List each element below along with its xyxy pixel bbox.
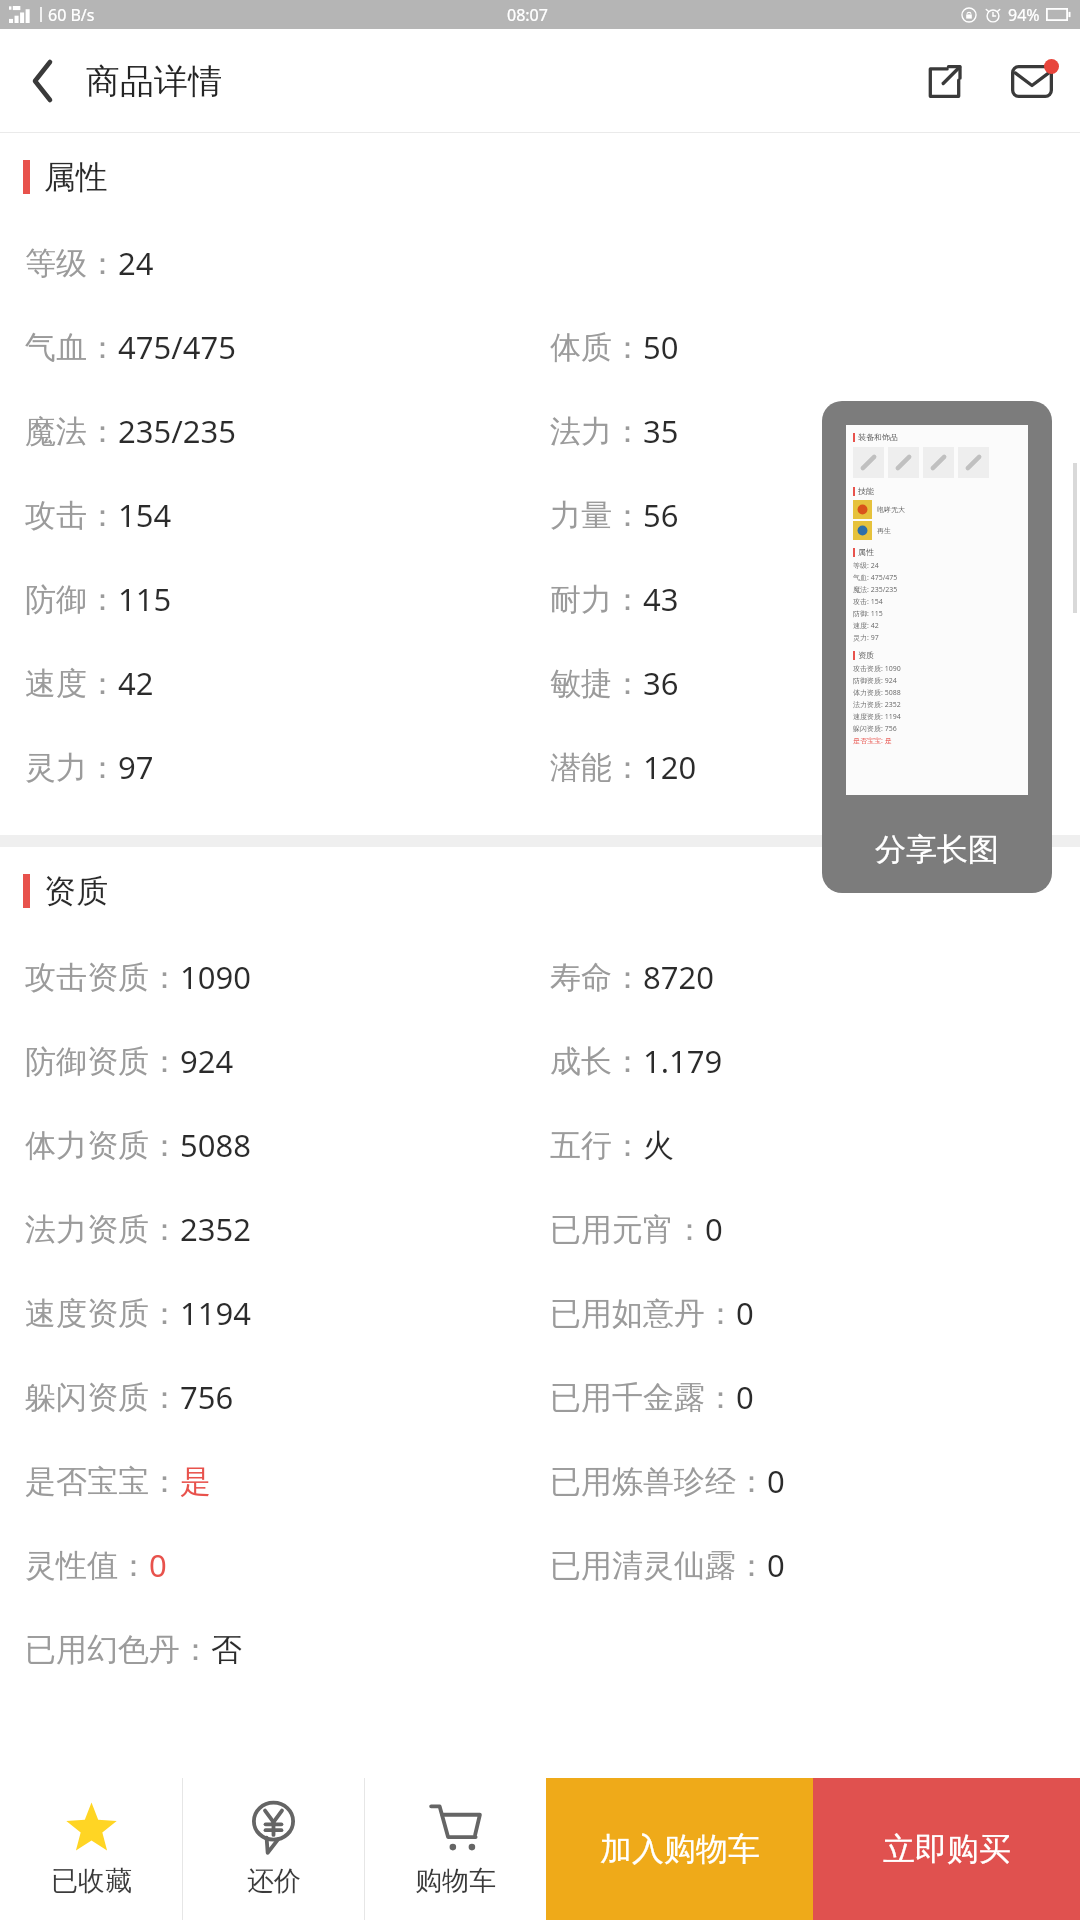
staticText: 体质： <box>550 328 643 367</box>
staticText: 924 <box>180 1040 234 1082</box>
staticText: 115 <box>118 578 172 620</box>
button[interactable]: 已收藏 <box>0 1778 182 1920</box>
button[interactable]: 还价 <box>183 1778 364 1920</box>
staticText: 防御资质： <box>25 1042 180 1081</box>
staticText: 再生 <box>877 526 891 535</box>
staticText: 43 <box>643 578 679 620</box>
staticText: 475/475 <box>118 326 236 368</box>
staticText: 已用千金露： <box>550 1378 736 1417</box>
button[interactable]: Messages <box>984 29 1080 133</box>
staticText: 商品详情 <box>86 60 222 103</box>
staticText: 56 <box>643 494 679 536</box>
staticText: 敏捷： <box>550 664 643 703</box>
staticText: 0 <box>705 1208 723 1250</box>
staticText: 咆哮无大 <box>877 505 905 514</box>
staticText: 是否宝宝： <box>25 1462 180 1501</box>
staticText: 0 <box>736 1292 754 1334</box>
button[interactable]: 立即购买 <box>813 1778 1080 1920</box>
staticText: 756 <box>180 1376 234 1418</box>
staticText: 法力资质： <box>25 1210 180 1249</box>
staticText: 已用如意丹： <box>550 1294 736 1333</box>
staticText: 装备和饰品 <box>858 432 898 442</box>
staticText: 8720 <box>643 956 714 998</box>
staticText: 属性 <box>858 547 874 557</box>
staticText: 五行： <box>550 1126 643 1165</box>
staticText: 还价 <box>247 1864 301 1898</box>
staticText: 42 <box>118 662 154 704</box>
staticText: 气血： <box>25 328 118 367</box>
staticText: 立即购买 <box>883 1829 1011 1869</box>
staticText: 1194 <box>180 1292 251 1334</box>
button[interactable]: 分享长图 <box>822 401 1052 893</box>
staticText: 购物车 <box>415 1864 496 1898</box>
staticText: 速度: 42 <box>853 621 879 631</box>
staticText: 躲闪资质: 756 <box>853 724 897 734</box>
staticText: 攻击资质： <box>25 958 180 997</box>
staticText: 防御: 115 <box>853 609 883 619</box>
staticText: 已用幻色丹： <box>25 1630 211 1669</box>
staticText: 加入购物车 <box>600 1829 760 1869</box>
staticText: 资质 <box>44 871 108 911</box>
staticText: 防御资质: 924 <box>853 676 897 686</box>
staticText: 法力： <box>550 412 643 451</box>
staticText: 0 <box>767 1544 785 1586</box>
staticText: 速度资质： <box>25 1294 180 1333</box>
staticText: 灵性值： <box>25 1546 149 1585</box>
staticText: 60 B/s <box>48 4 95 26</box>
staticText: 体力资质: 5088 <box>853 688 901 698</box>
staticText: 2352 <box>180 1208 251 1250</box>
staticText: 防御： <box>25 580 118 619</box>
staticText: 属性 <box>44 157 108 197</box>
staticText: 1090 <box>180 956 251 998</box>
staticText: 154 <box>118 494 172 536</box>
staticText: 120 <box>643 746 697 788</box>
staticText: 235/235 <box>118 410 236 452</box>
staticText: 已收藏 <box>51 1864 132 1898</box>
button[interactable]: 加入购物车 <box>546 1778 813 1920</box>
staticText: 火 <box>643 1126 674 1165</box>
staticText: 否 <box>211 1630 242 1669</box>
staticText: 灵力： <box>25 748 118 787</box>
staticText: 35 <box>643 410 679 452</box>
staticText: 已用清灵仙露： <box>550 1546 767 1585</box>
staticText: 法力资质: 2352 <box>853 700 901 710</box>
staticText: 力量： <box>550 496 643 535</box>
staticText: 攻击: 154 <box>853 597 883 607</box>
staticText: 是 <box>180 1462 211 1501</box>
staticText: 24 <box>118 242 154 284</box>
staticText: 已用炼兽珍经： <box>550 1462 767 1501</box>
staticText: 1.179 <box>643 1040 723 1082</box>
staticText: 08:07 <box>507 4 548 26</box>
staticText: 0 <box>149 1544 167 1586</box>
staticText: 魔法： <box>25 412 118 451</box>
staticText: 耐力： <box>550 580 643 619</box>
staticText: 攻击： <box>25 496 118 535</box>
staticText: 0 <box>767 1460 785 1502</box>
button[interactable]: 购物车 <box>365 1778 546 1920</box>
staticText: 资质 <box>858 650 874 660</box>
staticText: 速度： <box>25 664 118 703</box>
staticText: 躲闪资质： <box>25 1378 180 1417</box>
staticText: 灵力: 97 <box>853 633 879 643</box>
staticText: 36 <box>643 662 679 704</box>
staticText: 魔法: 235/235 <box>853 585 898 595</box>
staticText: 速度资质: 1194 <box>853 712 901 722</box>
staticText: 寿命： <box>550 958 643 997</box>
staticText: 0 <box>736 1376 754 1418</box>
staticText: 已用元宵： <box>550 1210 705 1249</box>
button[interactable]: Back <box>0 29 86 133</box>
staticText: 体力资质： <box>25 1126 180 1165</box>
staticText: 潜能： <box>550 748 643 787</box>
staticText: 分享长图 <box>875 830 999 869</box>
staticText: 气血: 475/475 <box>853 573 898 583</box>
staticText: 5088 <box>180 1124 251 1166</box>
button[interactable]: Share <box>904 29 984 133</box>
staticText: 94% <box>1008 4 1040 26</box>
staticText: 技能 <box>858 486 874 496</box>
staticText: 等级： <box>25 244 118 283</box>
staticText: 50 <box>643 326 679 368</box>
staticText: 成长： <box>550 1042 643 1081</box>
staticText: 攻击资质: 1090 <box>853 664 901 674</box>
staticText: 是否宝宝: 是 <box>853 736 892 746</box>
staticText: 97 <box>118 746 154 788</box>
